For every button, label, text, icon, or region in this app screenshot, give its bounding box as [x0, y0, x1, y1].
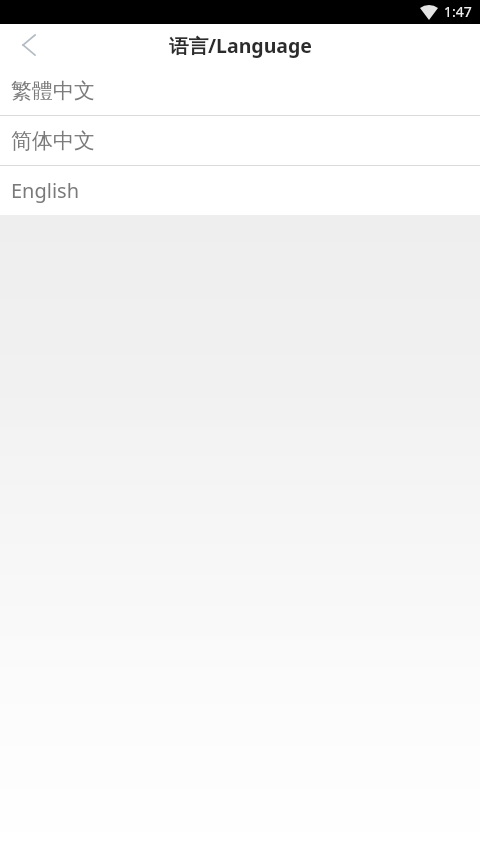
button[interactable]: Back	[0, 24, 57, 66]
staticText: 简体中文	[11, 128, 95, 154]
button[interactable]: 简体中文	[0, 116, 480, 165]
button[interactable]: 繁體中文	[0, 66, 480, 115]
staticText: 1:47	[444, 2, 472, 21]
staticText: 语言/Language	[169, 32, 312, 59]
staticText: English	[11, 177, 80, 204]
button[interactable]: English	[0, 166, 480, 215]
staticText: 繁體中文	[11, 78, 95, 104]
